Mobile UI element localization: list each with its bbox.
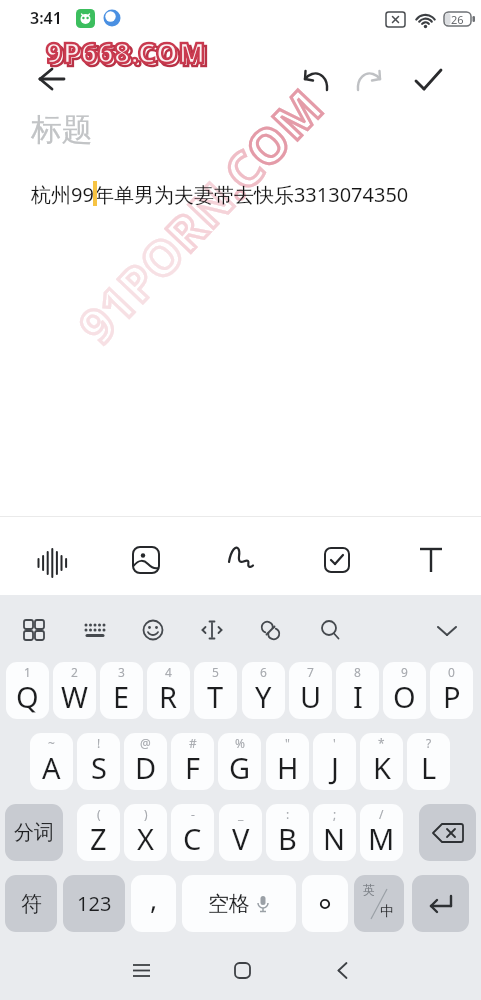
staticText: N xyxy=(323,819,346,858)
button[interactable]: % xyxy=(218,733,261,790)
staticText: D xyxy=(135,748,157,787)
staticText: W xyxy=(61,677,88,716)
button[interactable] xyxy=(257,617,284,644)
button[interactable] xyxy=(199,617,225,643)
button[interactable]: 8 xyxy=(336,662,379,719)
button[interactable] xyxy=(323,546,351,574)
staticText: S xyxy=(91,748,107,787)
staticText: 9P668.COM xyxy=(46,33,206,71)
staticText: 6 xyxy=(260,664,267,680)
button[interactable] xyxy=(418,546,444,574)
button[interactable] xyxy=(296,60,334,98)
staticText: G xyxy=(229,748,251,787)
button[interactable]: ? xyxy=(407,733,450,790)
staticText: ) xyxy=(144,806,148,822)
button[interactable] xyxy=(317,617,343,643)
staticText: : xyxy=(286,806,290,822)
button[interactable]: 9 xyxy=(383,662,426,719)
button[interactable]: _ xyxy=(219,804,262,861)
staticText: 0 xyxy=(448,664,455,680)
button[interactable]: 5 xyxy=(194,662,237,719)
staticText: U xyxy=(300,677,322,716)
staticText: 123 xyxy=(77,890,112,917)
staticText: T xyxy=(207,677,224,716)
button[interactable]: ~ xyxy=(30,733,73,790)
button[interactable]: / xyxy=(360,804,403,861)
button[interactable] xyxy=(82,617,108,643)
staticText: H xyxy=(277,748,299,787)
staticText: 1 xyxy=(24,664,31,680)
button[interactable]: 3 xyxy=(100,662,143,719)
button[interactable]: 空格 xyxy=(182,875,296,932)
staticText: 2 xyxy=(71,664,78,680)
button[interactable] xyxy=(21,617,47,643)
staticText: , xyxy=(150,880,158,917)
button[interactable] xyxy=(124,952,160,988)
button[interactable] xyxy=(408,60,448,98)
button[interactable]: - xyxy=(171,804,214,861)
staticText: 空格 xyxy=(208,891,250,917)
staticText: 4 xyxy=(165,664,172,680)
staticText: 标题 xyxy=(31,110,93,149)
staticText: P xyxy=(443,677,461,716)
button[interactable]: ( xyxy=(77,804,120,861)
button[interactable] xyxy=(140,617,166,643)
button[interactable]: ; xyxy=(313,804,356,861)
staticText: L xyxy=(421,748,437,787)
button[interactable] xyxy=(302,875,348,932)
staticText: 8 xyxy=(354,664,361,680)
button[interactable]: 6 xyxy=(242,662,285,719)
staticText: A xyxy=(42,748,61,787)
button[interactable]: 2 xyxy=(53,662,96,719)
staticText: J xyxy=(331,748,339,787)
button[interactable]: : xyxy=(266,804,309,861)
button[interactable]: 7 xyxy=(289,662,332,719)
staticText: 9P668.COM xyxy=(46,33,206,71)
staticText: M xyxy=(368,819,395,858)
button[interactable]: 分词 xyxy=(5,804,63,861)
staticText: B xyxy=(278,819,297,858)
staticText: K xyxy=(373,748,391,787)
button[interactable] xyxy=(36,546,68,580)
staticText: 3 xyxy=(118,664,125,680)
staticText: 英 xyxy=(363,882,375,897)
button[interactable] xyxy=(412,875,469,932)
staticText: C xyxy=(183,819,202,858)
staticText: % xyxy=(235,735,245,751)
button[interactable]: ) xyxy=(124,804,167,861)
staticText: F xyxy=(185,748,201,787)
button[interactable]: @ xyxy=(124,733,167,790)
button[interactable]: " xyxy=(266,733,309,790)
staticText: Y xyxy=(255,677,272,716)
button[interactable] xyxy=(131,545,161,575)
button[interactable]: ! xyxy=(77,733,120,790)
button[interactable]: 1 xyxy=(6,662,49,719)
staticText: Z xyxy=(90,819,107,858)
button[interactable] xyxy=(227,544,259,576)
button[interactable]: 0 xyxy=(430,662,473,719)
button[interactable] xyxy=(351,60,389,98)
staticText: 9 xyxy=(401,664,408,680)
button[interactable]: 123 xyxy=(63,875,125,932)
button[interactable]: # xyxy=(171,733,214,790)
button[interactable] xyxy=(324,952,360,988)
button[interactable] xyxy=(419,804,476,861)
button[interactable]: 英 xyxy=(354,875,404,932)
button[interactable]: 符 xyxy=(5,875,57,932)
staticText: R xyxy=(159,677,178,716)
staticText: 7 xyxy=(307,664,314,680)
button[interactable]: 4 xyxy=(147,662,190,719)
button[interactable]: , xyxy=(131,875,176,932)
staticText: ; xyxy=(333,806,337,822)
staticText: 26 xyxy=(451,12,464,27)
button[interactable] xyxy=(224,952,260,988)
button[interactable] xyxy=(30,60,74,100)
staticText: ' xyxy=(333,735,336,751)
button[interactable]: ' xyxy=(313,733,356,790)
button[interactable] xyxy=(434,617,460,643)
staticText: E xyxy=(113,677,130,716)
staticText: 杭州99年单男为夫妻带去快乐3313074350 xyxy=(31,181,409,208)
staticText: ! xyxy=(97,735,101,751)
staticText: ? xyxy=(426,735,432,751)
button[interactable]: * xyxy=(360,733,403,790)
